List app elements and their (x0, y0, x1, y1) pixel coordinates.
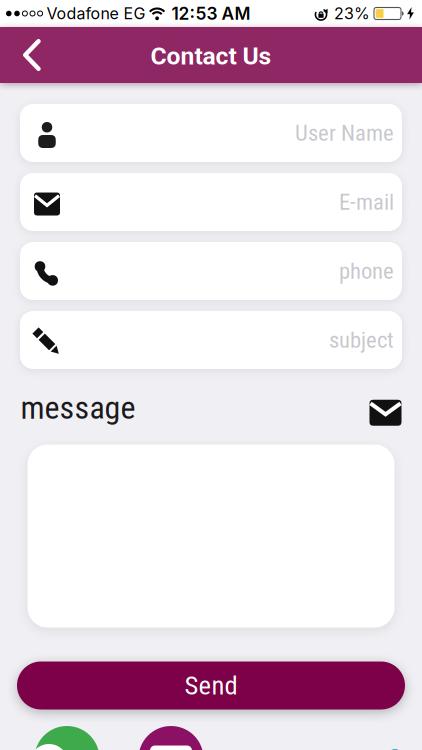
button[interactable]: E-mail (20, 173, 402, 231)
button[interactable]: Back (0, 39, 41, 71)
button[interactable]: User Name (20, 104, 402, 162)
staticText: 23% (334, 4, 370, 23)
button[interactable]: Email (138, 726, 203, 750)
staticText: E-mail (339, 189, 394, 215)
staticText: subject (329, 327, 394, 353)
staticText: User Name (295, 120, 394, 146)
staticText: phone (339, 258, 394, 284)
staticText: message (20, 389, 135, 426)
button[interactable]: WhatsApp (34, 726, 99, 750)
button[interactable]: phone (20, 242, 402, 300)
button[interactable]: Send (17, 661, 405, 709)
button[interactable]: subject (20, 311, 402, 369)
button[interactable]: Twitter (388, 749, 401, 750)
staticText: Send (184, 670, 237, 701)
staticText: Vodafone EG (47, 4, 146, 23)
button[interactable]: Message (369, 395, 401, 421)
staticText: Contact Us (150, 41, 271, 70)
staticText: 12:53 AM (171, 3, 250, 24)
